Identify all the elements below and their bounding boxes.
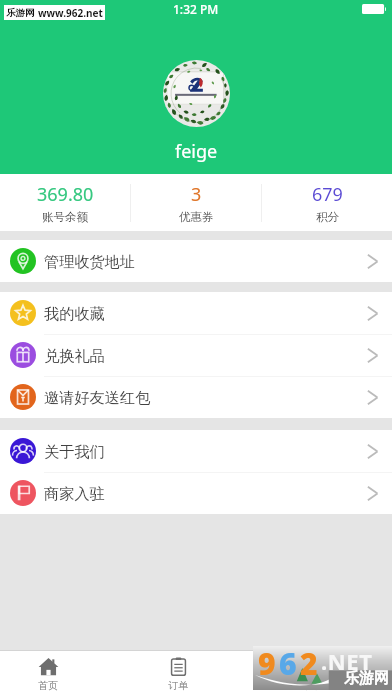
button[interactable]: 订单 — [113, 651, 243, 696]
staticText: 订单 — [168, 679, 188, 692]
button[interactable]: 我的 — [243, 651, 373, 696]
button[interactable]: 兑换礼品 — [0, 334, 392, 376]
staticText: 3 — [191, 182, 202, 207]
staticText: 商家入驻 — [44, 484, 105, 503]
staticText: 6 — [279, 643, 300, 684]
button[interactable]: 关于我们 — [0, 430, 392, 472]
staticText: 首页 — [38, 679, 58, 692]
button[interactable]: 首页 — [0, 651, 113, 696]
staticText: .NET — [321, 646, 373, 676]
staticText: 账号余额 — [42, 210, 88, 224]
staticText: 积分 — [316, 210, 339, 224]
staticText: 679 — [312, 182, 343, 207]
staticText: 1:32 PM — [173, 1, 219, 17]
button[interactable]: 商家入驻 — [0, 472, 392, 514]
staticText: 369.80 — [37, 182, 94, 207]
button[interactable]: 管理收货地址 — [0, 240, 392, 282]
staticText: 我的 — [298, 679, 318, 692]
button[interactable]: 我的收藏 — [0, 292, 392, 334]
staticText: 关于我们 — [44, 442, 105, 461]
staticText: 邀请好友送红包 — [44, 388, 151, 407]
staticText: 2 — [300, 643, 321, 684]
staticText: feige — [175, 139, 218, 164]
staticText: 兑换礼品 — [44, 346, 105, 365]
staticText: 我的收藏 — [44, 304, 105, 323]
staticText: 优惠券 — [179, 210, 214, 224]
staticText: 管理收货地址 — [44, 252, 136, 271]
staticText: 9 — [258, 643, 279, 684]
staticText: 乐游网 — [6, 7, 35, 19]
button[interactable]: 邀请好友送红包 — [0, 376, 392, 418]
staticText: 乐游网 — [344, 669, 389, 688]
staticText: www.962.net — [38, 6, 103, 20]
